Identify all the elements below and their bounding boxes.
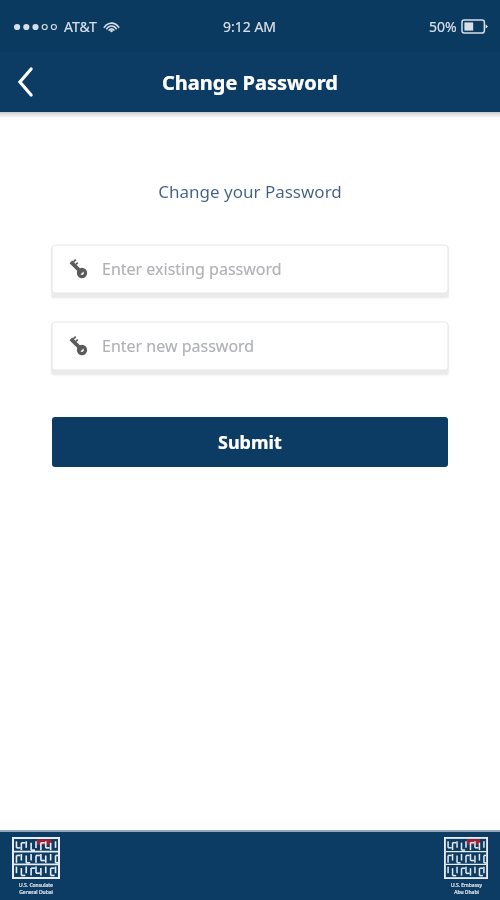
button[interactable]: U.S. Embassy Abu Dhabi [444,837,488,896]
staticText: 50% [429,17,457,36]
staticText: 9:12 AM [223,17,277,36]
staticText: U.S. Embassy [451,882,482,889]
staticText: Abu Dhabi [454,889,479,896]
button[interactable]: Enter existing password [52,245,448,293]
button[interactable]: Submit [52,417,448,467]
staticText: Submit [218,430,282,455]
button[interactable]: Back [0,56,52,108]
staticText: Change Password [162,69,338,96]
staticText: General Dubai [19,889,53,896]
staticText: U.S. Consulate [19,882,53,889]
button[interactable]: U.S. Consulate General Dubai [12,837,60,896]
staticText: AT&T [64,17,97,36]
button[interactable]: Enter new password [52,322,448,370]
staticText: Enter existing password [102,258,282,280]
staticText: Enter new password [102,335,255,357]
staticText: Change your Password [0,180,500,203]
